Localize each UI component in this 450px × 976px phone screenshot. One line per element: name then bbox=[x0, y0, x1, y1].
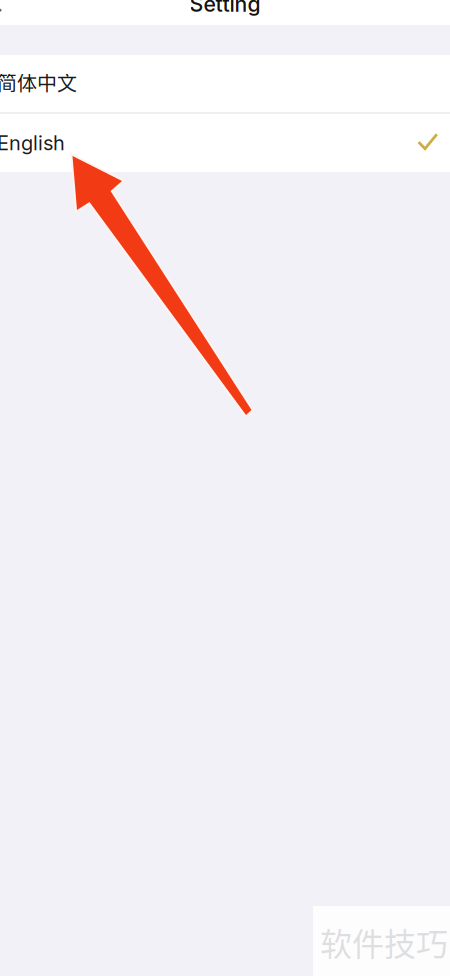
button[interactable]: English bbox=[0, 114, 450, 172]
button[interactable]: Back bbox=[0, 0, 20, 25]
staticText: English bbox=[0, 131, 65, 155]
staticText: Setting bbox=[189, 0, 260, 17]
staticText: 简体中文 bbox=[0, 67, 77, 96]
button[interactable]: 简体中文 bbox=[0, 55, 450, 112]
staticText: 软件技巧 bbox=[320, 919, 448, 965]
